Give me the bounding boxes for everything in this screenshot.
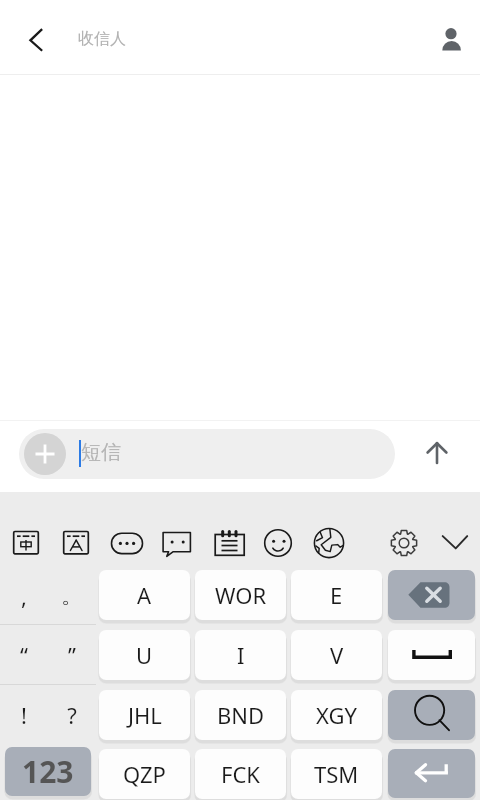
button[interactable]: Space [388,630,475,680]
button[interactable]: Search [388,690,475,740]
staticText: “ [0,640,48,670]
button[interactable]: FCK [195,749,286,799]
staticText: JHL [128,700,162,730]
staticText: V [330,640,344,670]
button[interactable]: V [291,630,382,680]
button[interactable]: Notes [205,519,253,567]
staticText: FCK [221,759,260,789]
staticText: 短信 [81,440,121,465]
button[interactable]: Contacts [430,17,472,59]
button[interactable]: Settings [380,519,428,567]
button[interactable]: “ [0,625,96,685]
button[interactable]: Send [413,431,461,479]
button[interactable]: Emoji [254,519,302,567]
staticText: ? [48,700,96,730]
button[interactable]: A [99,570,190,620]
staticText: ” [48,640,96,670]
staticText: 收信人 [78,29,126,49]
button[interactable]: Back [14,16,58,60]
staticText: BND [217,700,265,730]
button[interactable]: Latin input [52,519,100,567]
staticText: U [136,640,153,670]
button[interactable]: Backspace [388,570,475,620]
staticText: ! [0,700,48,730]
button[interactable]: U [99,630,190,680]
button[interactable]: Add attachment [19,429,395,479]
button[interactable]: , [0,566,96,626]
button[interactable]: Hide keyboard [431,519,479,567]
button[interactable]: Chinese input [2,519,50,567]
staticText: 123 [22,751,74,792]
button[interactable]: Quick phrases [103,519,151,567]
button[interactable]: BND [195,690,286,740]
button[interactable]: Add attachment [24,433,66,475]
button[interactable]: Enter [388,749,475,798]
button[interactable]: I [195,630,286,680]
button[interactable]: Translate [305,519,353,567]
staticText: XGY [316,700,357,730]
button[interactable]: E [291,570,382,620]
staticText: QZP [123,759,166,789]
button[interactable]: XGY [291,690,382,740]
staticText: E [330,580,343,610]
button[interactable]: ! [0,685,96,745]
staticText: I [237,640,245,670]
staticText: 。 [48,582,96,610]
button[interactable]: 123 [5,747,91,796]
staticText: TSM [314,759,359,789]
button[interactable]: TSM [291,749,382,799]
button[interactable]: Messages [153,519,201,567]
staticText: A [137,580,152,610]
staticText: , [0,581,48,611]
staticText: WOR [215,580,267,610]
button[interactable]: JHL [99,690,190,740]
button[interactable]: WOR [195,570,286,620]
button[interactable]: QZP [99,749,190,799]
